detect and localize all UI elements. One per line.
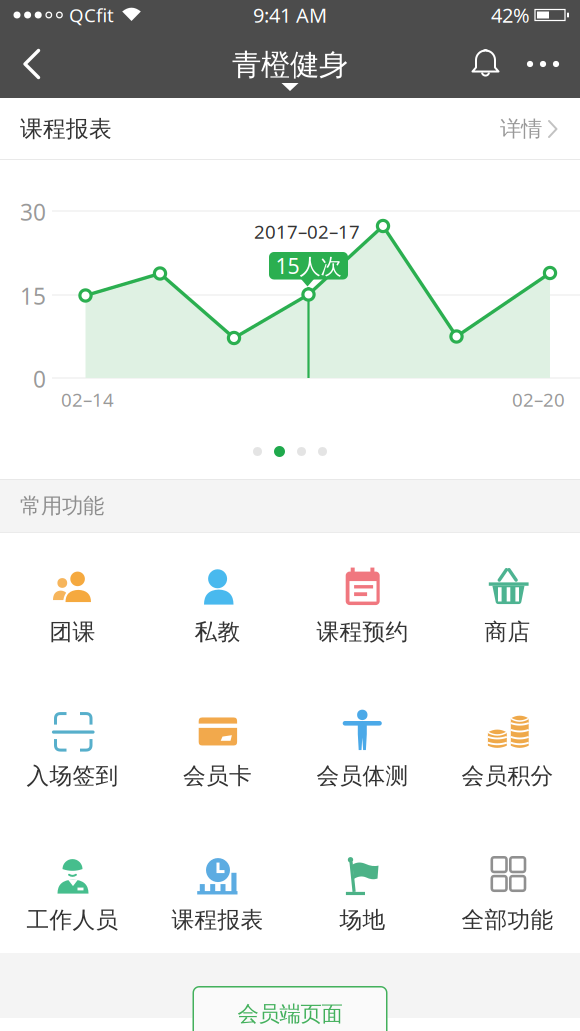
staticText: 会员卡 xyxy=(183,762,252,790)
staticText: 课程预约 xyxy=(316,618,408,646)
staticText: 青橙健身 xyxy=(232,47,348,83)
button[interactable]: 团课 xyxy=(0,533,145,677)
staticText: 02–20 xyxy=(512,387,565,412)
button[interactable]: 入场签到 xyxy=(0,677,145,821)
staticText: QCfit xyxy=(69,3,114,27)
staticText: 场地 xyxy=(339,906,385,934)
button[interactable]: Notifications xyxy=(470,29,510,98)
button[interactable]: 全部功能 xyxy=(435,821,580,965)
staticText: 常用功能 xyxy=(20,493,104,519)
staticText: 会员积分 xyxy=(461,762,553,790)
button[interactable]: 会员体测 xyxy=(290,677,435,821)
staticText: 私教 xyxy=(194,618,240,646)
button[interactable]: 课程报表 xyxy=(145,821,290,965)
button[interactable]: 详情 xyxy=(500,116,558,142)
button[interactable]: 会员卡 xyxy=(145,677,290,821)
button[interactable]: 会员积分 xyxy=(435,677,580,821)
staticText: 30 xyxy=(20,197,46,227)
staticText: 入场签到 xyxy=(26,762,118,790)
staticText: 会员体测 xyxy=(316,762,408,790)
button[interactable]: 场地 xyxy=(290,821,435,965)
staticText: 02–14 xyxy=(61,387,114,412)
staticText: 详情 xyxy=(500,116,542,142)
staticText: 全部功能 xyxy=(461,906,553,934)
staticText: 9:41 AM xyxy=(253,2,327,28)
button[interactable]: 课程预约 xyxy=(290,533,435,677)
staticText: 课程报表 xyxy=(20,115,112,143)
staticText: 0 xyxy=(33,364,46,394)
button[interactable]: 会员端页面 xyxy=(192,986,387,1031)
staticText: 工作人员 xyxy=(26,906,118,934)
staticText: 2017–02–17 xyxy=(254,219,360,244)
staticText: 商店 xyxy=(484,618,530,646)
staticText: 团课 xyxy=(49,618,95,646)
staticText: 42% xyxy=(491,2,530,28)
button[interactable]: Back xyxy=(0,29,40,98)
staticText: 15人次 xyxy=(275,252,341,280)
button[interactable]: 商店 xyxy=(435,533,580,677)
staticText: 会员端页面 xyxy=(237,1001,342,1027)
button[interactable]: 私教 xyxy=(145,533,290,677)
staticText: 15 xyxy=(20,281,46,311)
staticText: 课程报表 xyxy=(171,906,263,934)
button[interactable]: More xyxy=(510,30,580,98)
button[interactable]: 工作人员 xyxy=(0,821,145,965)
